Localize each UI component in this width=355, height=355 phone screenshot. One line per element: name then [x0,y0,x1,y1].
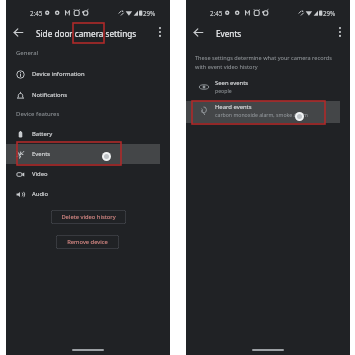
staticText: Notifications [32,91,68,99]
staticText: 2:45 [210,9,223,17]
button[interactable]: More options [332,24,348,40]
staticText: These settings determine what your camer… [195,54,340,71]
staticText: Events [32,150,51,158]
staticText: 2:45 [30,9,43,17]
button[interactable]: Events [6,144,170,164]
staticText: carbon monoxide alarm, smoke alarm [215,111,308,118]
button[interactable]: Audio [6,184,170,204]
button[interactable]: Delete video history [51,210,126,224]
staticText: Events [216,28,242,39]
button[interactable]: Back [10,24,27,41]
staticText: Battery [32,130,53,138]
staticText: Heard events [215,103,252,111]
button[interactable]: Video [6,164,170,184]
staticText: people [215,87,232,94]
button[interactable]: Seen events [186,76,350,97]
staticText: 29% [323,9,336,17]
staticText: Device features [16,110,60,118]
button[interactable]: Back [190,24,207,41]
button[interactable]: Battery [6,124,170,144]
button[interactable]: More options [152,24,168,40]
button[interactable]: Heard events [186,100,350,121]
staticText: Audio [32,190,49,198]
staticText: Remove device [67,238,108,246]
button[interactable]: Device information [6,64,170,84]
staticText: Side door camera settings [36,28,137,39]
staticText: 29% [143,9,156,17]
button[interactable]: Remove device [56,235,119,249]
staticText: Delete video history [61,213,116,221]
staticText: Device information [32,70,85,78]
staticText: Seen events [215,79,249,87]
staticText: General [16,49,39,57]
staticText: Video [32,170,48,178]
button[interactable]: Notifications [6,85,170,105]
